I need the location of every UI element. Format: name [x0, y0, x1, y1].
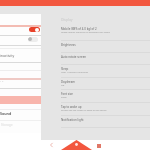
button[interactable]: Daydream	[61, 80, 147, 87]
staticText: Tap to wake up	[61, 105, 82, 109]
staticText: Brightness	[61, 43, 76, 47]
staticText: inactivity	[0, 53, 15, 58]
button[interactable]: Font size	[61, 92, 147, 99]
button[interactable]: Auto rotate screen	[61, 55, 147, 59]
button[interactable]: Notification light	[61, 118, 147, 122]
staticText: Image quality reduction to advanced rest…	[61, 31, 111, 34]
staticText: After 1 minute of inactivity	[61, 71, 89, 74]
staticText: Font size	[61, 92, 73, 96]
staticText: Storage	[1, 123, 13, 127]
staticText: Notification light	[61, 118, 84, 122]
staticText: · ··	[0, 80, 4, 84]
button[interactable]: Wi-Fi on	[29, 27, 40, 32]
button[interactable]: Bluetooth off	[28, 37, 38, 42]
staticText: Off	[61, 84, 65, 87]
staticText: Double tap the screen to wake up the dev…	[61, 109, 107, 112]
button[interactable]: Brightness	[61, 43, 147, 47]
staticText: Mobile (88% of 4.0 kg) of 2	[61, 27, 97, 31]
staticText: Auto rotate screen	[61, 55, 87, 59]
button[interactable]: Back	[49, 142, 54, 148]
button[interactable]: Mobile (88% of 4.0 kg) of 2	[61, 27, 147, 34]
staticText: Display	[61, 17, 73, 22]
button[interactable]: Tap to wake up	[61, 105, 147, 112]
staticText: Small	[61, 96, 67, 99]
staticText: Daydream	[61, 80, 76, 84]
button[interactable]: Home	[61, 140, 92, 150]
staticText: Sound	[0, 111, 12, 116]
staticText: Sleep	[61, 67, 69, 71]
button[interactable]: Sleep	[61, 67, 147, 74]
